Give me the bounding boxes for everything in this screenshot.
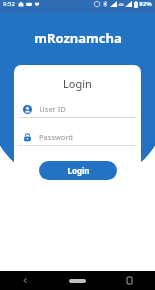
staticText: 92%	[139, 0, 152, 8]
button[interactable]: Back	[0, 271, 51, 290]
button[interactable]: Password	[23, 130, 132, 144]
staticText: Password	[39, 132, 73, 142]
button[interactable]: User ID	[23, 102, 132, 116]
button[interactable]: Login	[39, 161, 117, 180]
staticText: 9:52	[3, 0, 15, 8]
button[interactable]: Home	[51, 271, 103, 290]
staticText: 4G	[118, 2, 124, 7]
staticText: mRoznamcha	[34, 29, 122, 47]
staticText: User ID	[39, 104, 66, 114]
staticText: Login	[67, 165, 90, 176]
button[interactable]: Recent apps	[103, 271, 155, 290]
staticText: Login	[63, 76, 92, 91]
